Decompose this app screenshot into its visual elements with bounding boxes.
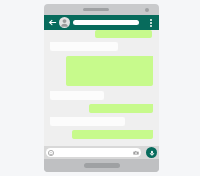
button[interactable]: Camera	[133, 150, 139, 156]
button[interactable]: Send voice message	[146, 147, 157, 158]
button[interactable]: Contact profile photo	[59, 17, 70, 28]
button[interactable]: More options	[145, 17, 156, 28]
button[interactable]: Camera	[46, 148, 141, 157]
button[interactable]	[95, 30, 152, 38]
button[interactable]	[72, 130, 153, 139]
button[interactable]	[89, 104, 153, 113]
button[interactable]: Back	[47, 17, 58, 28]
button[interactable]	[73, 20, 139, 25]
